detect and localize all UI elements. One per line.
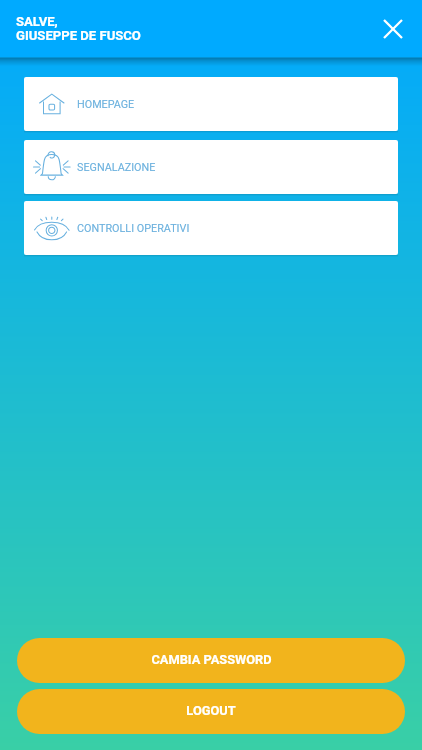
staticText: SEGNALAZIONE: [77, 161, 156, 174]
button[interactable]: HOMEPAGE: [24, 77, 398, 131]
staticText: LOGOUT: [186, 703, 236, 718]
staticText: GIUSEPPE DE FUSCO: [16, 28, 141, 43]
staticText: HOMEPAGE: [77, 98, 135, 111]
staticText: CAMBIA PASSWORD: [151, 652, 272, 667]
button[interactable]: Chiudi: [373, 9, 413, 49]
button[interactable]: SEGNALAZIONE: [24, 140, 398, 194]
button[interactable]: CAMBIA PASSWORD: [17, 638, 405, 683]
button[interactable]: CONTROLLI OPERATIVI: [24, 201, 398, 255]
staticText: SALVE,: [16, 14, 58, 29]
button[interactable]: LOGOUT: [17, 689, 405, 734]
staticText: CONTROLLI OPERATIVI: [77, 222, 190, 235]
